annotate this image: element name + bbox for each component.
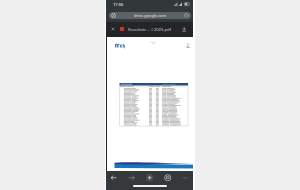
staticText: 17:56 (113, 2, 124, 8)
button[interactable]: Site information (109, 12, 191, 19)
button[interactable] (107, 37, 193, 171)
button[interactable]: Forward (128, 174, 135, 181)
button[interactable]: More options (181, 174, 188, 181)
staticText: Resultats ... l 2025.pdf (128, 27, 172, 33)
other: Reload (184, 13, 189, 18)
other: Site information (111, 13, 116, 18)
button[interactable]: Home (146, 174, 153, 181)
button[interactable]: Close (110, 26, 116, 32)
button[interactable]: Tabs (164, 174, 171, 181)
button[interactable]: Download (181, 26, 187, 32)
button[interactable]: Back (110, 174, 117, 181)
staticText: drive.google.com (114, 13, 186, 18)
